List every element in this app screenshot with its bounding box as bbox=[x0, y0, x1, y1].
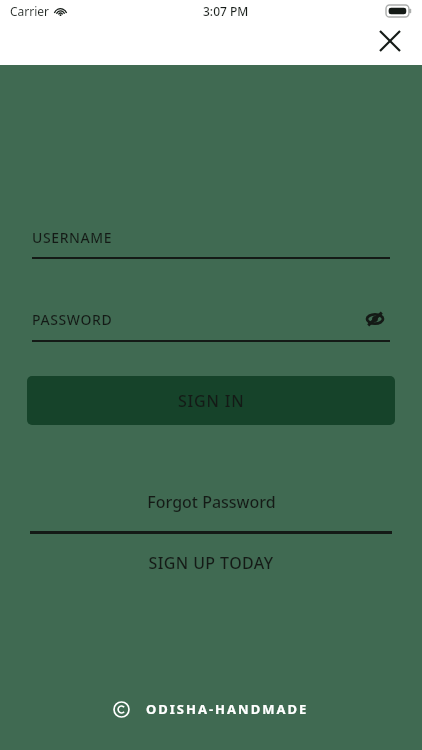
button[interactable]: Forgot Password bbox=[0, 487, 422, 517]
button[interactable]: ODISHA-HANDMADE bbox=[113, 700, 309, 718]
button[interactable]: SIGN UP TODAY bbox=[0, 548, 422, 578]
staticText: PASSWORD bbox=[32, 310, 113, 329]
button[interactable]: Close bbox=[372, 23, 408, 59]
staticText: SIGN UP TODAY bbox=[148, 552, 274, 574]
button[interactable]: SIGN IN bbox=[27, 376, 395, 425]
staticText: 3:07 PM bbox=[203, 3, 249, 19]
staticText: SIGN IN bbox=[178, 390, 245, 412]
button[interactable]: PASSWORD bbox=[32, 304, 390, 342]
staticText: Forgot Password bbox=[147, 491, 276, 513]
staticText: USERNAME bbox=[32, 228, 113, 247]
staticText: Carrier bbox=[10, 3, 50, 19]
staticText: ODISHA-HANDMADE bbox=[146, 700, 309, 718]
button[interactable]: USERNAME bbox=[32, 228, 390, 259]
button[interactable]: Show password bbox=[360, 304, 390, 334]
